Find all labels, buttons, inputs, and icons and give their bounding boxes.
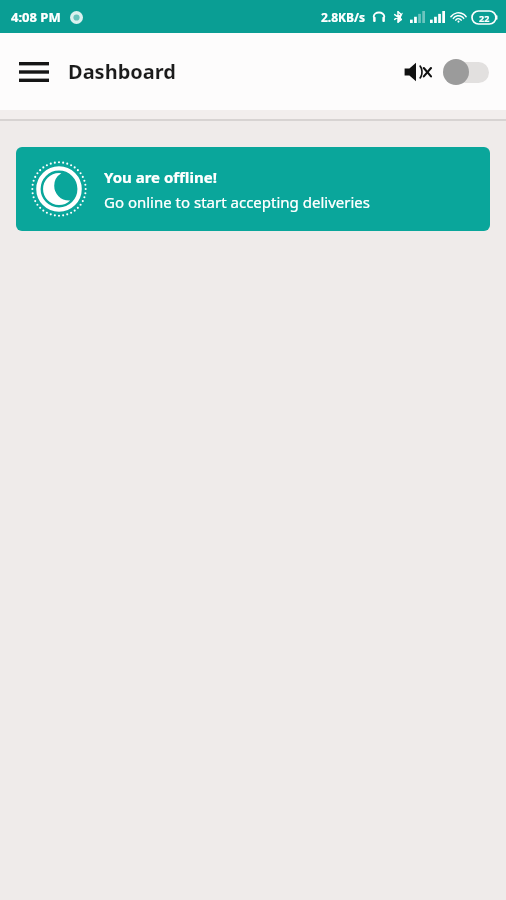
staticText: 4:08 PM xyxy=(11,8,61,26)
staticText: 2.8KB/s xyxy=(321,9,366,25)
button[interactable]: Open navigation menu xyxy=(8,46,60,98)
staticText: 22 xyxy=(479,12,490,24)
staticText: You are offline! xyxy=(104,167,217,187)
staticText: Dashboard xyxy=(68,58,176,85)
button[interactable]: You are offline! xyxy=(16,147,490,231)
button[interactable]: Sound muted xyxy=(402,55,436,89)
button[interactable]: Go online toggle, off xyxy=(440,57,490,87)
staticText: Go online to start accepting deliveries xyxy=(104,192,370,212)
